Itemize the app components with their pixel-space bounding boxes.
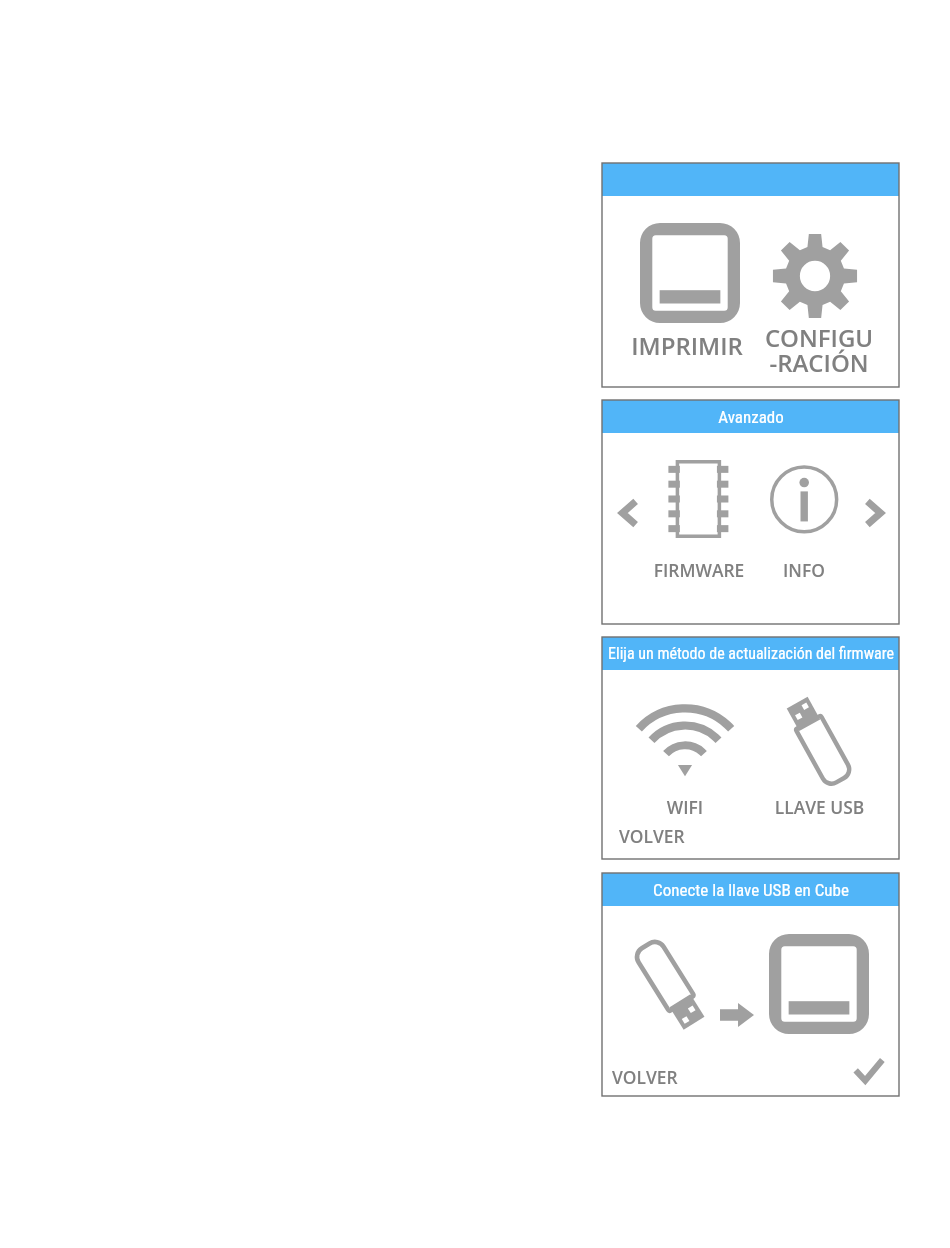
button[interactable]: INFO: [754, 558, 854, 582]
button[interactable]: IMPRIMIR: [613, 329, 761, 362]
button[interactable]: CONFIGU -RACIÓN: [743, 321, 895, 379]
button[interactable]: VOLVER: [619, 824, 729, 848]
button[interactable]: LLAVE USB: [757, 694, 882, 816]
button[interactable]: LLAVE USB: [757, 795, 882, 819]
button[interactable]: Conecte la llave USB en Cube: [602, 873, 899, 906]
button[interactable]: CONFIGU -RACIÓN: [743, 216, 895, 361]
button[interactable]: [602, 163, 899, 196]
button[interactable]: INFO: [754, 449, 854, 579]
button[interactable]: VOLVER: [612, 1065, 722, 1089]
button[interactable]: Confirm: [849, 1051, 889, 1091]
button[interactable]: Previous: [611, 495, 647, 531]
staticText: Elija un método de actualización del fir…: [608, 644, 894, 663]
staticText: Conecte la llave USB en Cube: [653, 880, 849, 900]
button[interactable]: Avanzado: [602, 400, 899, 433]
button[interactable]: Elija un método de actualización del fir…: [602, 637, 899, 670]
button[interactable]: IMPRIMIR: [613, 216, 761, 356]
button[interactable]: FIRMWARE: [629, 558, 769, 582]
button[interactable]: Next: [856, 495, 892, 531]
staticText: Avanzado: [718, 407, 784, 427]
button[interactable]: WIFI: [635, 694, 735, 816]
button[interactable]: FIRMWARE: [629, 449, 769, 579]
button[interactable]: WIFI: [635, 795, 735, 819]
